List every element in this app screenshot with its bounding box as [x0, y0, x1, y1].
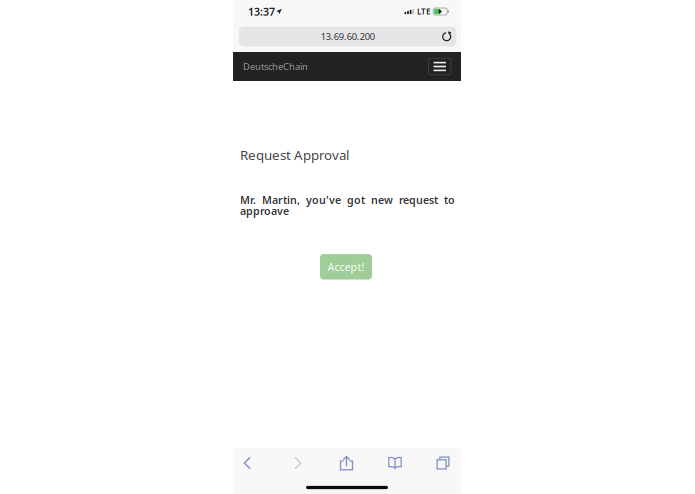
staticText: Mr. Martin, you've got new request to — [240, 193, 455, 207]
staticText: DeutscheChain — [243, 60, 308, 73]
staticText: Accept! — [327, 260, 364, 274]
staticText: Request Approval — [240, 146, 349, 164]
button[interactable]: 13.69.60.200 — [233, 26, 461, 48]
staticText: 13.69.60.200 — [321, 30, 375, 43]
button[interactable]: Bookmarks — [380, 451, 410, 475]
button[interactable]: Tabs — [428, 451, 458, 475]
button[interactable]: Back — [232, 451, 262, 475]
button[interactable]: Forward — [283, 451, 313, 475]
button[interactable]: Accept! — [320, 254, 372, 279]
staticText: 13:37 — [248, 4, 275, 19]
button[interactable]: Share — [331, 451, 361, 475]
staticText: LTE — [417, 6, 430, 17]
staticText: approave — [240, 204, 289, 218]
button[interactable]: Menu — [428, 58, 451, 75]
